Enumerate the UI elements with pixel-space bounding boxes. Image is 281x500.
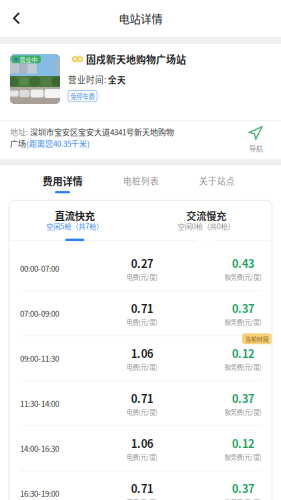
staticText: 服务费(元/度) (224, 407, 261, 416)
staticText: 1.06 (131, 435, 153, 451)
staticText: 电费(元/度) (126, 272, 157, 281)
staticText: 费用详情 (42, 173, 82, 188)
button[interactable]: 交流慢充 (140, 200, 272, 241)
staticText: 服务费(元/度) (224, 497, 261, 500)
staticText: 0.27 (131, 255, 153, 271)
staticText: 营业时间: (68, 73, 108, 86)
staticText: 16:30-19:00 (20, 488, 59, 499)
staticText: 电站详情 (118, 10, 162, 27)
staticText: 免停车费 (70, 92, 94, 101)
staticText: 0.71 (131, 390, 153, 406)
button[interactable]: 费用详情 (22, 173, 103, 193)
staticText: 导航 (249, 143, 263, 153)
staticText: 0.37 (232, 390, 254, 406)
staticText: 00:00-07:00 (20, 263, 59, 274)
staticText: 空闲0枪（共0枪） (178, 221, 235, 231)
staticText: 07:00-09:00 (20, 308, 59, 319)
staticText: 0.37 (232, 480, 254, 496)
staticText: 电费(元/度) (126, 497, 157, 500)
staticText: 关于站点 (199, 175, 235, 187)
staticText: 全天 (108, 73, 126, 86)
button[interactable]: Back (0, 0, 44, 37)
staticText: 14:00-16:30 (20, 443, 59, 454)
staticText: 当前时段 (245, 334, 269, 343)
staticText: 营业中 (19, 55, 37, 64)
staticText: 服务费(元/度) (224, 452, 261, 461)
staticText: 0.37 (232, 300, 254, 316)
staticText: 0.12 (232, 345, 254, 361)
staticText: 电费(元/度) (126, 317, 157, 326)
staticText: 0.71 (131, 480, 153, 496)
staticText: 固戍新天地购物广场站 (86, 52, 186, 66)
staticText: 电费(元/度) (126, 407, 157, 416)
button[interactable]: 导航 (239, 126, 273, 153)
staticText: 广场 (10, 138, 26, 149)
staticText: 1.06 (131, 345, 153, 361)
button[interactable]: 关于站点 (179, 175, 255, 192)
staticText: 11:30-14:00 (20, 398, 59, 409)
staticText: 交流慢充 (186, 208, 226, 223)
staticText: (距离您40.35千米) (26, 138, 90, 149)
staticText: 地址: (10, 126, 30, 138)
staticText: 空闲5枪（共7枪） (46, 221, 103, 231)
staticText: 电费(元/度) (126, 362, 157, 371)
staticText: 服务费(元/度) (224, 362, 261, 371)
staticText: 0.12 (232, 435, 254, 451)
staticText: 0.71 (131, 300, 153, 316)
staticText: 电费(元/度) (126, 452, 157, 461)
button[interactable]: 直流快充 (9, 200, 140, 241)
staticText: 直流快充 (55, 208, 95, 223)
staticText: 服务费(元/度) (224, 272, 261, 281)
staticText: 09:00-11:30 (20, 353, 59, 364)
staticText: 0.43 (232, 255, 254, 271)
staticText: 深圳市宝安区宝安大道4341号新天地购物 (30, 126, 174, 138)
staticText: 电桩列表 (123, 175, 159, 187)
button[interactable]: 电桩列表 (103, 175, 179, 192)
staticText: 服务费(元/度) (224, 317, 261, 326)
